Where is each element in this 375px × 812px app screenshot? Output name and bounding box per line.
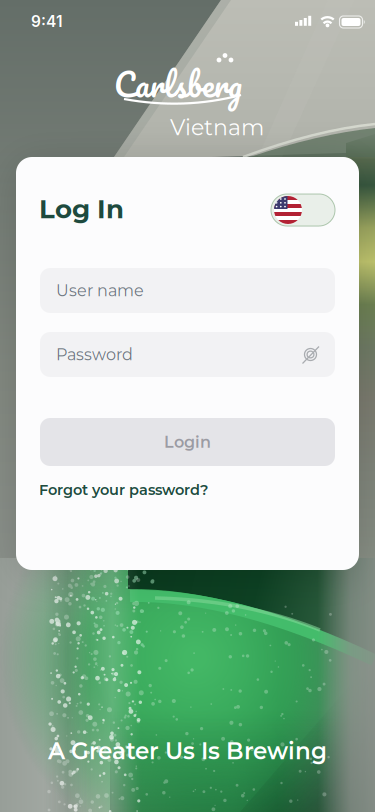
staticText: 9:41: [31, 12, 63, 31]
staticText: Forgot your password?: [39, 481, 208, 499]
staticText: Log In: [39, 193, 124, 225]
button[interactable]: Language: English: [271, 194, 335, 226]
staticText: Login: [164, 432, 211, 452]
staticText: A Greater Us Is Brewing: [48, 737, 327, 765]
staticText: Password: [56, 345, 133, 364]
button[interactable]: User name: [40, 268, 335, 313]
staticText: Carlsberg: [114, 57, 242, 111]
button[interactable]: Login: [40, 418, 335, 466]
button[interactable]: Forgot your password?: [39, 481, 208, 499]
staticText: User name: [56, 281, 144, 300]
button[interactable]: Password: [40, 332, 335, 377]
staticText: Vietnam: [170, 114, 264, 141]
